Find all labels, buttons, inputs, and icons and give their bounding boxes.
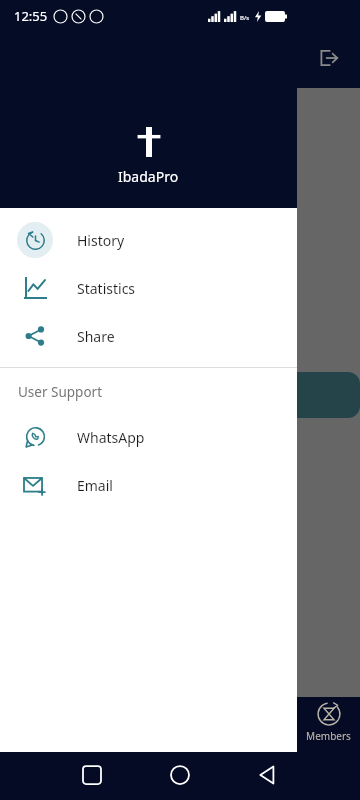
button[interactable]: Email bbox=[0, 461, 297, 509]
staticText: WhatsApp bbox=[77, 428, 145, 447]
button[interactable]: History bbox=[0, 216, 297, 264]
button[interactable]: WhatsApp bbox=[0, 413, 297, 461]
staticText: 12:55 bbox=[14, 7, 48, 25]
staticText: User Support bbox=[18, 383, 103, 401]
button[interactable]: Share bbox=[0, 312, 297, 360]
button[interactable]: Logout bbox=[313, 43, 343, 73]
staticText: Email bbox=[77, 476, 113, 495]
staticText: IbadaPro bbox=[118, 167, 179, 186]
staticText: Share bbox=[77, 327, 115, 346]
staticText: B/s bbox=[240, 14, 250, 22]
button[interactable]: Members bbox=[297, 701, 360, 743]
staticText: Statistics bbox=[77, 279, 136, 298]
staticText: Members bbox=[297, 729, 360, 743]
button[interactable]: Statistics bbox=[0, 264, 297, 312]
staticText: History bbox=[77, 231, 125, 250]
